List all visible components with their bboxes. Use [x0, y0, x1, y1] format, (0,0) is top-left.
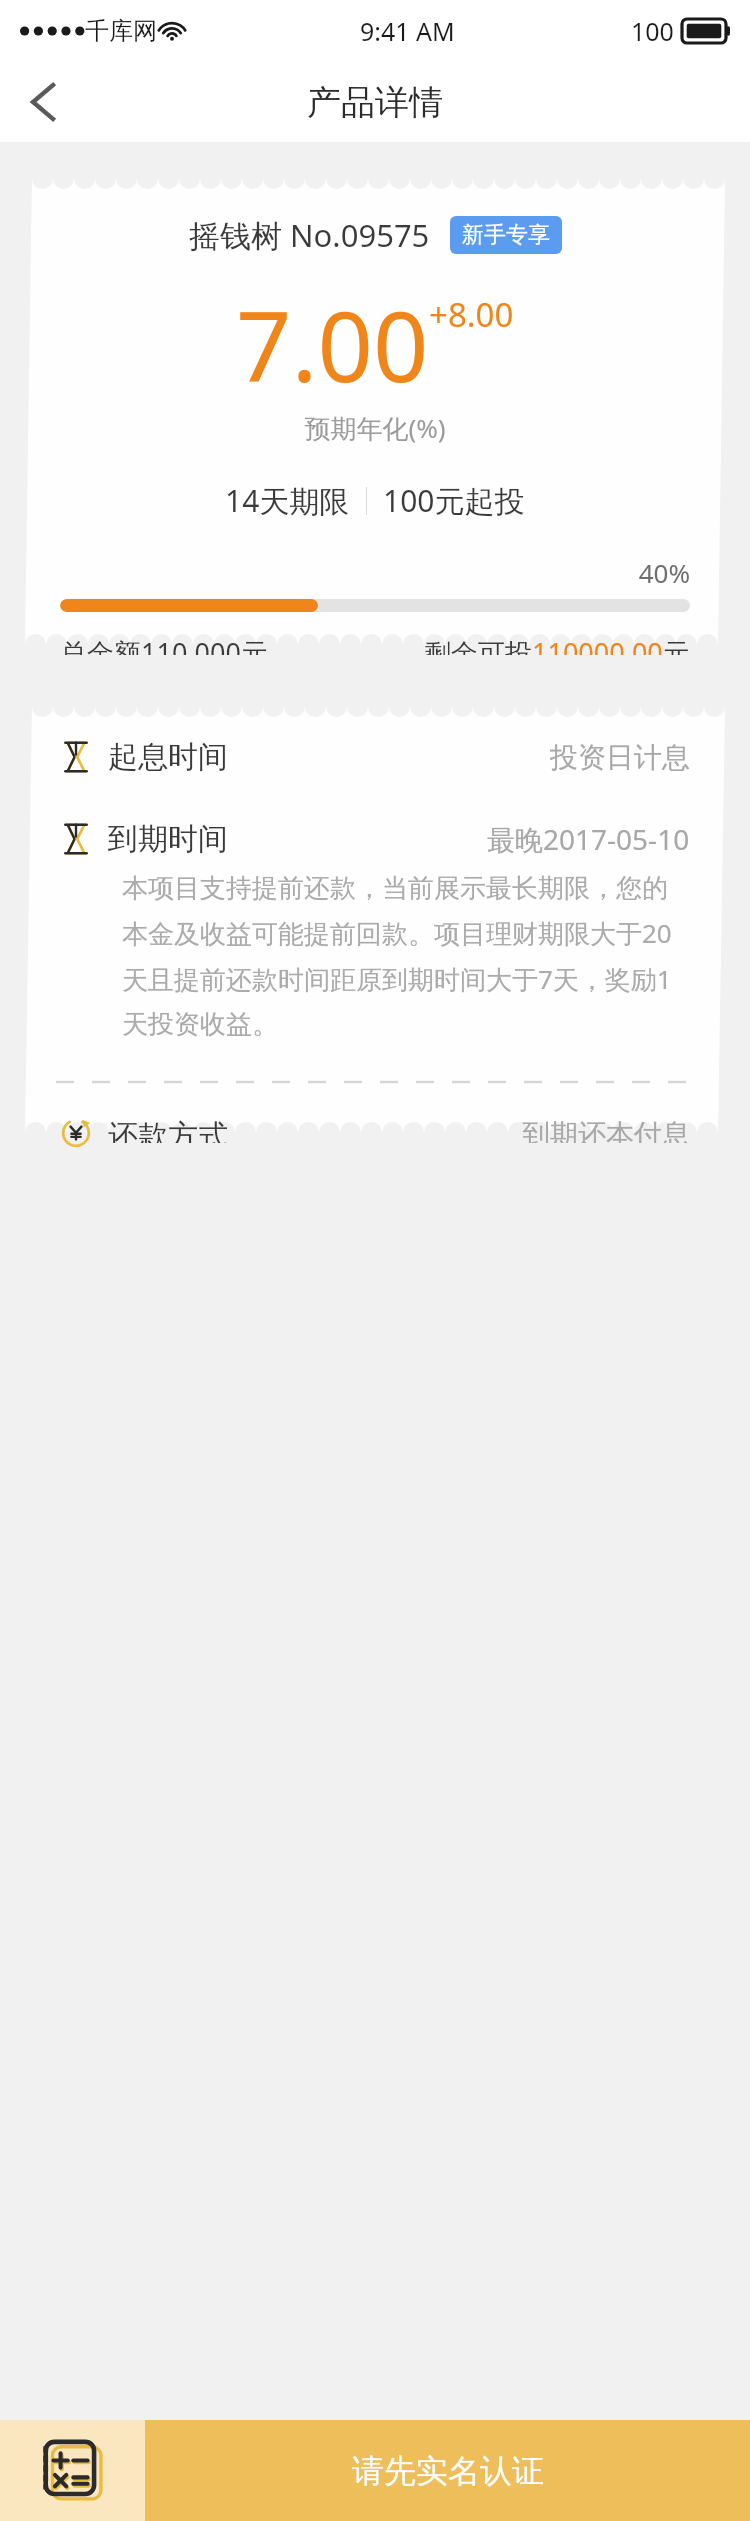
staticText: 40% [60, 555, 690, 590]
button[interactable]: 起息时间 [32, 738, 718, 776]
button[interactable]: 到期时间 [32, 820, 718, 858]
staticText: 还款方式 [108, 1117, 228, 1143]
button[interactable]: 还款方式 [32, 1117, 718, 1143]
staticText: 总金额110,000元 [60, 634, 268, 655]
staticText: 14天期限 [225, 480, 350, 521]
staticText: +8.00 [429, 292, 514, 337]
staticText: 起息时间 [108, 738, 228, 776]
staticText: 100 [631, 14, 674, 48]
staticText: 投资日计息 [550, 740, 690, 775]
staticText: 产品详情 [307, 81, 443, 124]
staticText: 最晚2017-05-10 [487, 820, 690, 858]
button[interactable]: Back [0, 62, 86, 142]
staticText: 到期还本付息 [522, 1117, 690, 1143]
staticText: 到期时间 [108, 820, 228, 858]
staticText: 摇钱树 No.09575 [189, 214, 430, 256]
button[interactable]: Calculator [0, 2420, 145, 2521]
staticText: 9:41 AM [360, 14, 455, 48]
staticText: 请先实名认证 [352, 2451, 544, 2491]
staticText: 7.00 [236, 278, 429, 410]
staticText: 预期年化(%) [32, 410, 718, 446]
staticText: 千库网 [85, 16, 157, 46]
button[interactable]: 新手专享 [462, 221, 550, 249]
staticText: 本项目支持提前还款，当前展示最长期限，您的本金及收益可能提前回款。项目理财期限大… [122, 872, 688, 1041]
button[interactable]: 请先实名认证 [145, 2420, 750, 2521]
staticText: 100元起投 [383, 480, 525, 521]
staticText: 新手专享 [462, 221, 550, 249]
staticText: 剩余可投110000,00元 [424, 634, 690, 655]
